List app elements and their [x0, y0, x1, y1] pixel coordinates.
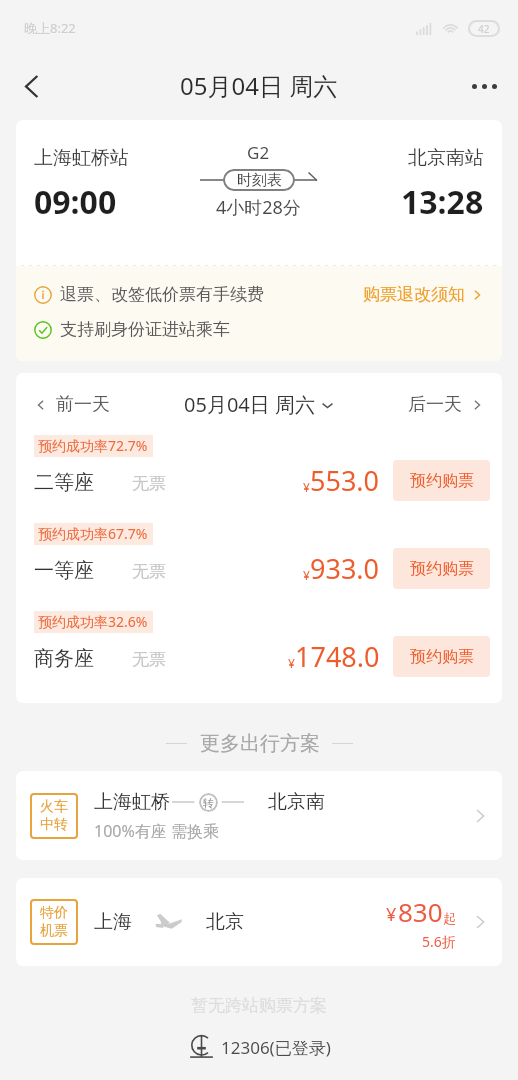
staticText: 预约成功率72.7% [38, 436, 148, 455]
staticText: 100%有座 需换乘 [94, 820, 219, 842]
staticText: ¥ [386, 902, 397, 927]
staticText: 退票、改签低价票有手续费 [60, 284, 264, 305]
button[interactable]: 预约购票 [393, 548, 490, 589]
staticText: 更多出行方案 [200, 731, 320, 756]
staticText: 无票 [132, 649, 166, 670]
staticText: ¥ [288, 655, 295, 671]
button[interactable]: 前一天 [34, 393, 110, 416]
staticText: 转 [203, 796, 214, 810]
staticText: 830 [398, 894, 443, 929]
staticText: 中转 [40, 816, 68, 834]
button[interactable]: 后一天 [408, 393, 484, 416]
staticText: 4小时28分 [216, 195, 301, 220]
staticText: 前一天 [56, 393, 110, 416]
button[interactable]: 特价 [16, 878, 502, 966]
staticText: 1748.0 [295, 638, 380, 675]
staticText: 933.0 [310, 550, 380, 587]
staticText: 上海 [94, 910, 132, 934]
staticText: 预约购票 [410, 647, 474, 667]
button[interactable]: Back [9, 64, 53, 108]
staticText: 机票 [40, 922, 68, 940]
staticText: 北京南 [268, 790, 325, 814]
staticText: 13:28 [401, 180, 484, 224]
staticText: 预约成功率67.7% [38, 524, 148, 543]
button[interactable]: 预约购票 [393, 636, 490, 677]
staticText: 5.6折 [422, 932, 456, 951]
staticText: 购票退改须知 [363, 284, 465, 305]
button[interactable]: 退票、改签低价票有手续费 [34, 284, 484, 305]
staticText: 无票 [132, 561, 166, 582]
staticText: 商务座 [34, 646, 94, 671]
button[interactable]: 火车 [16, 771, 502, 860]
staticText: 无票 [132, 473, 166, 494]
staticText: 预约成功率32.6% [38, 612, 148, 631]
button[interactable]: 预约购票 [393, 460, 490, 501]
staticText: 预约购票 [410, 471, 474, 491]
staticText: 09:00 [34, 180, 117, 224]
staticText: 北京南站 [408, 146, 484, 170]
staticText: ¥ [303, 479, 310, 495]
staticText: 晚上8:22 [24, 19, 76, 37]
staticText: 暂无跨站购票方案 [191, 995, 327, 1016]
staticText: ¥ [303, 567, 310, 583]
staticText: 预约购票 [410, 559, 474, 579]
staticText: 05月04日 周六 [184, 391, 315, 418]
staticText: G2 [247, 141, 270, 164]
staticText: 12306(已登录) [221, 1036, 331, 1059]
staticText: 553.0 [310, 462, 380, 499]
staticText: 上海虹桥 [94, 790, 170, 814]
staticText: 时刻表 [237, 171, 282, 190]
staticText: 火车 [40, 798, 68, 816]
staticText: 42 [478, 22, 490, 36]
staticText: 后一天 [408, 393, 462, 416]
staticText: 北京 [206, 910, 244, 934]
staticText: 支持刷身份证进站乘车 [60, 319, 230, 340]
staticText: 二等座 [34, 470, 94, 495]
button[interactable]: 时刻表 [223, 169, 295, 191]
staticText: 起 [443, 910, 456, 926]
staticText: 上海虹桥站 [34, 146, 129, 170]
staticText: 一等座 [34, 558, 94, 583]
staticText: 05月04日 周六 [180, 69, 338, 102]
staticText: 特价 [40, 904, 68, 922]
button[interactable]: 05月04日 周六 [184, 391, 333, 418]
button[interactable]: More options [462, 64, 506, 108]
